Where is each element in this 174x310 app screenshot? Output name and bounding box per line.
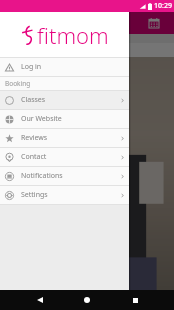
staticText: Contact — [21, 152, 47, 162]
staticText: Reviews — [21, 133, 48, 143]
staticText: Settings — [21, 190, 48, 200]
button[interactable]: Recents — [127, 292, 143, 308]
button[interactable]: Contact — [0, 148, 129, 166]
staticText: Notifications — [21, 171, 63, 181]
button[interactable]: Calendar — [147, 16, 161, 30]
staticText: Booking — [5, 79, 31, 88]
staticText: Log in — [21, 62, 42, 72]
button[interactable]: Home — [79, 292, 95, 308]
button[interactable]: Classes — [0, 91, 129, 109]
staticText: fitmom — [37, 20, 109, 50]
staticText: Our Website — [21, 114, 62, 124]
button[interactable]: Log in — [0, 58, 129, 76]
button[interactable]: Reviews — [0, 129, 129, 147]
button[interactable]: Notifications — [0, 167, 129, 185]
button[interactable]: Settings — [0, 186, 129, 204]
button[interactable]: @ Westb... — [0, 43, 174, 57]
button[interactable]: Our Website — [0, 110, 129, 128]
staticText: 10:29 — [154, 1, 172, 11]
staticText: Classes — [21, 95, 46, 105]
button[interactable]: Back — [32, 292, 48, 308]
